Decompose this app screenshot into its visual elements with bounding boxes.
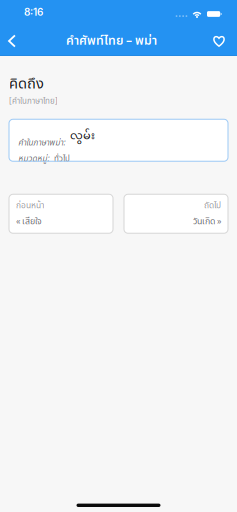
staticText: คิดถึง — [9, 73, 44, 95]
button[interactable]: Add to favourites — [207, 26, 231, 55]
button[interactable]: ถัดไป — [124, 194, 228, 233]
staticText: ถัดไป — [204, 199, 221, 212]
staticText: วันเกิด » — [193, 215, 221, 228]
staticText: คำศัพท์ไทย – พม่า — [66, 32, 157, 50]
staticText: 8:16 — [24, 6, 43, 18]
staticText: « เสียใจ — [16, 215, 42, 228]
button[interactable]: ก่อนหน้า — [9, 194, 113, 233]
staticText: หมวดหมู่: — [18, 153, 49, 165]
staticText: လွမ်း — [70, 124, 95, 149]
button[interactable]: Back — [0, 26, 24, 55]
staticText: ก่อนหน้า — [16, 199, 44, 212]
staticText: คำในภาษาพม่า: — [18, 137, 65, 149]
staticText: [คำในภาษาไทย] — [9, 95, 58, 107]
staticText: ทั่วไป — [54, 153, 70, 165]
